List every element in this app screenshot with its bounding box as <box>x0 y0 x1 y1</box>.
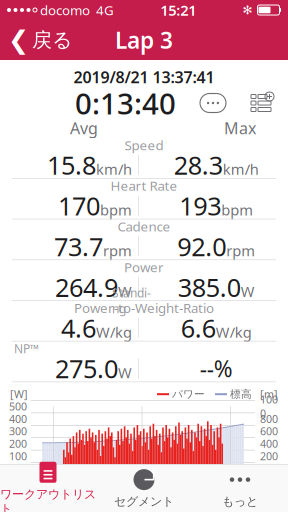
staticText: ❮ <box>8 26 29 54</box>
staticText: 1:35:00 <box>34 475 75 490</box>
staticText: 193 <box>179 189 221 222</box>
staticText: 800 <box>260 412 278 426</box>
staticText: 戻る <box>32 28 72 52</box>
staticText: Speed <box>124 136 163 154</box>
button[interactable]: ワークアウトリスト <box>0 465 96 512</box>
staticText: 385.0 <box>178 270 241 304</box>
staticText: セグメント <box>114 494 174 509</box>
staticText: Power-to-Weight-Ratio <box>74 299 214 317</box>
staticText: 0 <box>21 461 27 475</box>
button[interactable]: Add to list <box>244 88 278 118</box>
staticText: W <box>118 363 132 382</box>
staticText: 200 <box>260 449 278 463</box>
staticText: W/kg <box>96 322 132 342</box>
staticText: 15.8 <box>47 148 96 182</box>
staticText: 標高 <box>227 388 252 401</box>
staticText: 500 <box>9 399 27 413</box>
staticText: Avg <box>70 117 98 139</box>
staticText: パワー <box>169 388 205 401</box>
button[interactable]: もっと <box>192 465 288 512</box>
staticText: 1:45:00 <box>217 475 258 490</box>
staticText: もっと <box>222 494 258 509</box>
staticText: Standing <box>112 285 151 317</box>
staticText: 92.0 <box>177 230 226 263</box>
staticText: 200 <box>9 436 27 451</box>
staticText: 100 <box>9 449 27 463</box>
staticText: Cadence <box>117 217 170 235</box>
staticText: W <box>241 281 255 301</box>
staticText: 4.6 <box>61 311 96 345</box>
staticText: rpm <box>103 241 132 260</box>
staticText: ✻ <box>242 3 252 17</box>
staticText: 400 <box>260 436 278 451</box>
staticText: Lap 3 <box>115 25 173 55</box>
staticText: 275.0 <box>55 352 118 385</box>
staticText: 28.3 <box>174 148 223 182</box>
staticText: 6.6 <box>181 311 216 345</box>
staticText: [m] <box>260 387 278 401</box>
staticText: 1000 <box>260 392 278 420</box>
staticText: Power <box>124 258 164 276</box>
button[interactable]: ❮ <box>0 20 80 60</box>
staticText: 0:13:40 <box>75 83 176 122</box>
staticText: 2019/8/21 13:37:41 <box>73 66 214 88</box>
staticText: Heart Rate <box>110 177 177 194</box>
staticText: rpm <box>226 241 255 260</box>
staticText: [W] <box>10 387 28 401</box>
button[interactable]: Comments <box>196 88 230 118</box>
staticText: 300 <box>9 424 27 438</box>
staticText: ワークアウトリスト <box>0 487 96 512</box>
staticText: Max <box>224 117 256 139</box>
staticText: docomo <box>37 1 90 19</box>
staticText: bpm <box>100 200 132 220</box>
staticText: 4G <box>90 1 114 19</box>
staticText: 400 <box>9 412 27 426</box>
staticText: W <box>118 281 132 301</box>
button[interactable]: セグメント <box>96 465 192 512</box>
staticText: bpm <box>221 200 253 220</box>
staticText: 600 <box>260 424 278 438</box>
staticText: --% <box>200 353 233 383</box>
staticText: 0 <box>260 461 266 475</box>
staticText: 1:40:00 <box>125 475 166 490</box>
staticText: 15:21 <box>160 0 196 20</box>
staticText: 73.7 <box>54 230 103 263</box>
staticText: 264.9 <box>55 270 118 304</box>
staticText: km/h <box>96 159 132 179</box>
staticText: 170 <box>58 189 100 222</box>
staticText: km/h <box>223 159 259 179</box>
staticText: W/kg <box>216 322 252 342</box>
staticText: NP™ <box>14 340 39 356</box>
